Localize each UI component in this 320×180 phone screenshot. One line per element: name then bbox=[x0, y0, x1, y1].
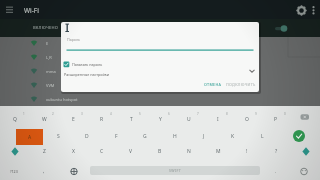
staticText: SWIFT bbox=[169, 168, 182, 173]
staticText: A bbox=[28, 134, 32, 141]
staticText: U bbox=[187, 116, 191, 123]
button[interactable]: K bbox=[219, 129, 247, 144]
staticText: G bbox=[143, 133, 147, 140]
button[interactable]: R bbox=[88, 112, 116, 127]
button[interactable] bbox=[67, 165, 81, 178]
staticText: O bbox=[245, 116, 249, 123]
button[interactable]: W bbox=[30, 112, 58, 127]
button[interactable]: ?123 bbox=[3, 165, 25, 177]
staticText: R bbox=[100, 116, 104, 123]
staticText: 1 bbox=[23, 112, 25, 116]
staticText: L,R bbox=[46, 55, 52, 60]
staticText: Q bbox=[13, 116, 17, 123]
staticText: E bbox=[46, 41, 49, 46]
staticText: T bbox=[130, 116, 133, 123]
staticText: . bbox=[275, 168, 277, 175]
button[interactable]: H bbox=[161, 129, 189, 144]
staticText: K bbox=[231, 133, 235, 140]
button[interactable]: ? bbox=[262, 144, 290, 159]
staticText: 6 bbox=[168, 112, 170, 116]
button[interactable]: M bbox=[204, 144, 232, 159]
staticText: V bbox=[129, 148, 133, 155]
button[interactable] bbox=[62, 58, 172, 70]
button[interactable] bbox=[0, 92, 61, 106]
staticText: D bbox=[85, 133, 89, 140]
staticText: VVM bbox=[46, 83, 55, 88]
button[interactable]: Z bbox=[30, 144, 58, 159]
button[interactable]: E bbox=[59, 112, 87, 127]
button[interactable] bbox=[309, 5, 318, 16]
button[interactable]: . bbox=[269, 165, 283, 177]
button[interactable]: ! bbox=[233, 144, 261, 159]
button[interactable]: , bbox=[37, 165, 51, 177]
staticText: 9 bbox=[255, 112, 257, 116]
staticText: S bbox=[57, 133, 60, 140]
button[interactable] bbox=[4, 4, 16, 15]
staticText: M bbox=[216, 148, 221, 155]
button[interactable]: L bbox=[248, 129, 276, 144]
staticText: H bbox=[173, 133, 177, 140]
button[interactable]: D bbox=[73, 129, 101, 144]
staticText: mma bbox=[46, 69, 56, 74]
staticText: 0 bbox=[284, 112, 286, 116]
button[interactable]: I bbox=[204, 112, 232, 127]
button[interactable]: ОТМЕНА bbox=[196, 79, 230, 90]
staticText: B bbox=[158, 148, 162, 155]
staticText: Z bbox=[43, 148, 46, 155]
staticText: W bbox=[42, 116, 47, 123]
staticText: ВКЛЮЧЕНО bbox=[33, 25, 58, 31]
button[interactable] bbox=[0, 50, 61, 64]
staticText: Пароль bbox=[67, 37, 81, 42]
staticText: Расширенные настройки bbox=[64, 72, 110, 77]
staticText: C bbox=[100, 148, 104, 155]
staticText: ?123 bbox=[10, 169, 18, 174]
staticText: ОТМЕНА bbox=[204, 82, 222, 87]
button[interactable]: T bbox=[117, 112, 145, 127]
staticText: 8 bbox=[226, 112, 228, 116]
staticText: ! bbox=[246, 148, 248, 155]
staticText: 5 bbox=[139, 112, 141, 116]
button[interactable] bbox=[0, 19, 320, 37]
button[interactable]: B bbox=[146, 144, 174, 159]
staticText: F bbox=[115, 133, 118, 140]
button[interactable] bbox=[7, 145, 23, 158]
button[interactable]: Y bbox=[146, 112, 174, 127]
button[interactable] bbox=[0, 78, 61, 92]
staticText: N bbox=[187, 148, 191, 155]
button[interactable]: P bbox=[262, 112, 290, 127]
button[interactable]: SWIFT bbox=[90, 166, 260, 175]
button[interactable]: N bbox=[175, 144, 203, 159]
button[interactable] bbox=[298, 145, 314, 158]
button[interactable] bbox=[0, 36, 61, 50]
button[interactable]: O bbox=[233, 112, 261, 127]
staticText: I bbox=[217, 116, 219, 123]
staticText: E bbox=[72, 116, 75, 123]
staticText: X bbox=[72, 148, 75, 155]
staticText: L bbox=[261, 133, 264, 140]
staticText: 2 bbox=[52, 112, 54, 116]
button[interactable]: U bbox=[175, 112, 203, 127]
button[interactable] bbox=[297, 111, 313, 123]
button[interactable]: X bbox=[59, 144, 87, 159]
staticText: xubuntu hotspot bbox=[46, 97, 78, 102]
button[interactable] bbox=[0, 64, 61, 78]
button[interactable]: F bbox=[102, 129, 130, 144]
button[interactable]: G bbox=[131, 129, 159, 144]
staticText: Wi-Fi bbox=[24, 6, 39, 15]
staticText: , bbox=[43, 168, 45, 175]
button[interactable]: V bbox=[117, 144, 145, 159]
staticText: Показать пароль bbox=[72, 62, 103, 67]
button[interactable]: A bbox=[16, 129, 43, 145]
button[interactable]: J bbox=[190, 129, 218, 144]
button[interactable]: ПОДКЛЮЧИТЬ bbox=[219, 79, 263, 90]
button[interactable] bbox=[293, 130, 305, 142]
button[interactable]: C bbox=[88, 144, 116, 159]
staticText: ? bbox=[275, 148, 278, 155]
button[interactable]: Q bbox=[1, 112, 29, 127]
button[interactable]: S bbox=[44, 129, 72, 144]
button[interactable] bbox=[297, 165, 311, 178]
button[interactable] bbox=[296, 5, 307, 16]
staticText: 7 bbox=[197, 112, 199, 116]
staticText: 3 bbox=[81, 112, 83, 116]
button[interactable] bbox=[62, 69, 258, 79]
